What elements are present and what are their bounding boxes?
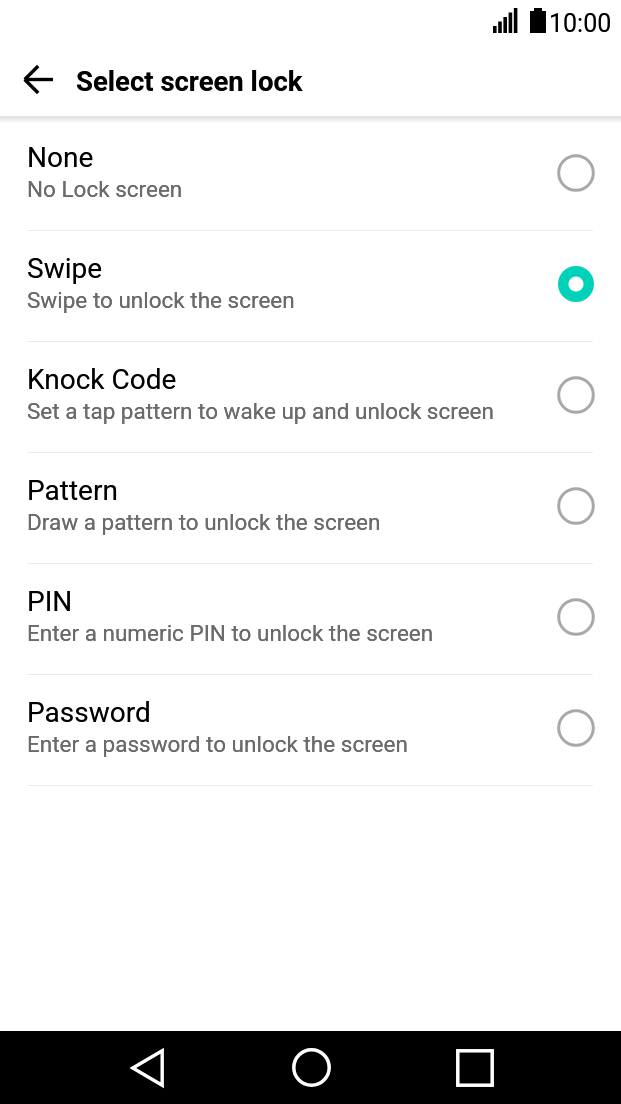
staticText: Enter a numeric PIN to unlock the screen (27, 620, 434, 646)
staticText: Password (27, 696, 151, 729)
staticText: Draw a pattern to unlock the screen (27, 509, 381, 535)
staticText: Select screen lock (76, 65, 303, 97)
button[interactable]: Password (0, 675, 621, 785)
staticText: 10:00 (549, 9, 612, 38)
button[interactable]: Back (107, 1031, 187, 1104)
staticText: Swipe to unlock the screen (27, 287, 295, 313)
staticText: Enter a password to unlock the screen (27, 731, 408, 757)
staticText: PIN (27, 585, 73, 618)
staticText: Enter a password to unlock the screen (27, 731, 408, 757)
staticText: Draw a pattern to unlock the screen (27, 509, 381, 535)
staticText: 10:00 (549, 9, 612, 38)
button[interactable]: Home (271, 1031, 351, 1104)
staticText: Swipe (27, 252, 103, 285)
button[interactable]: Swipe (0, 231, 621, 341)
staticText: None (27, 141, 94, 174)
staticText: No Lock screen (27, 176, 183, 202)
staticText: Select screen lock (76, 65, 303, 97)
staticText: Enter a numeric PIN to unlock the screen (27, 620, 434, 646)
button[interactable]: Pattern (0, 453, 621, 563)
staticText: Set a tap pattern to wake up and unlock … (27, 398, 494, 424)
staticText: Pattern (27, 474, 118, 507)
staticText: None (27, 141, 94, 174)
button[interactable]: PIN (0, 564, 621, 674)
staticText: Swipe (27, 252, 103, 285)
button[interactable]: None (0, 120, 621, 230)
button[interactable]: Recent apps (435, 1031, 515, 1104)
staticText: Swipe to unlock the screen (27, 287, 295, 313)
button[interactable]: Knock Code (0, 342, 621, 452)
button[interactable]: Navigate up (2, 46, 72, 118)
staticText: Pattern (27, 474, 118, 507)
staticText: PIN (27, 585, 73, 618)
staticText: Knock Code (27, 363, 177, 396)
staticText: Set a tap pattern to wake up and unlock … (27, 398, 494, 424)
staticText: No Lock screen (27, 176, 183, 202)
staticText: Knock Code (27, 363, 177, 396)
staticText: Password (27, 696, 151, 729)
